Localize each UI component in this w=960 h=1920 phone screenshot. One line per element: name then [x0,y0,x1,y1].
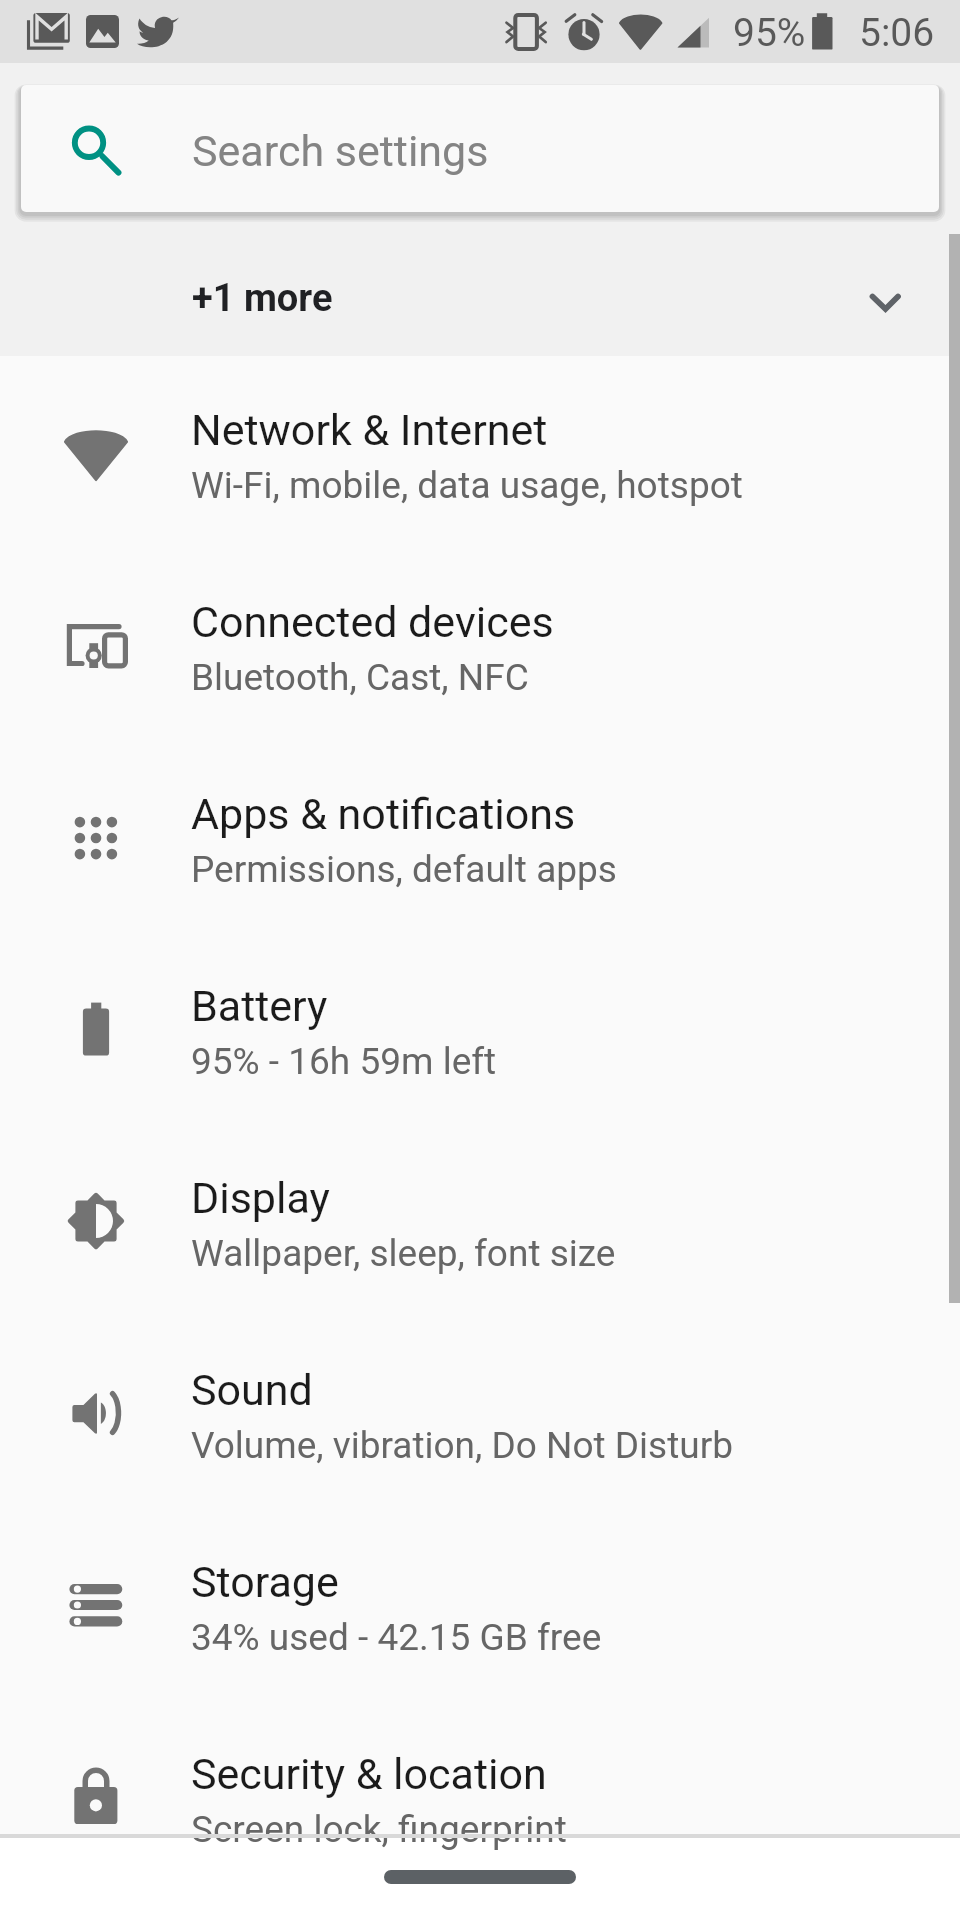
other: Home [384,1870,576,1884]
button[interactable]: Battery [0,892,960,1084]
staticText: 95% [733,10,806,56]
staticText: 5:06 [859,10,935,56]
staticText: Bluetooth, Cast, NFC [191,656,529,699]
other: Expand [861,276,909,324]
staticText: Storage [191,1557,339,1607]
staticText: Search settings [192,126,489,176]
staticText: Wi-Fi, mobile, data usage, hotspot [191,464,743,507]
staticText: 95% - 16h 59m left [191,1040,497,1083]
button[interactable]: Connected devices [0,508,960,700]
button[interactable]: Security & location [0,1660,960,1852]
staticText: Network & Internet [191,405,548,455]
button[interactable]: +1 more [0,233,960,356]
staticText: Battery [191,981,328,1031]
staticText: +1 more [192,276,333,321]
button[interactable]: Display [0,1084,960,1276]
button[interactable]: Storage [0,1468,960,1660]
staticText: Connected devices [191,597,554,647]
staticText: Security & location [191,1749,547,1799]
staticText: Volume, vibration, Do Not Disturb [191,1424,734,1467]
staticText: Sound [191,1365,313,1415]
staticText: Permissions, default apps [191,848,617,891]
staticText: 34% used - 42.15 GB free [191,1616,602,1659]
staticText: Screen lock, fingerprint [191,1808,567,1851]
staticText: Wallpaper, sleep, font size [191,1232,616,1275]
button[interactable]: Search settings [21,85,939,212]
staticText: Apps & notifications [191,789,576,839]
button[interactable]: Network & Internet [0,316,960,508]
button[interactable]: Apps & notifications [0,700,960,892]
button[interactable]: Sound [0,1276,960,1468]
staticText: Display [191,1173,330,1223]
